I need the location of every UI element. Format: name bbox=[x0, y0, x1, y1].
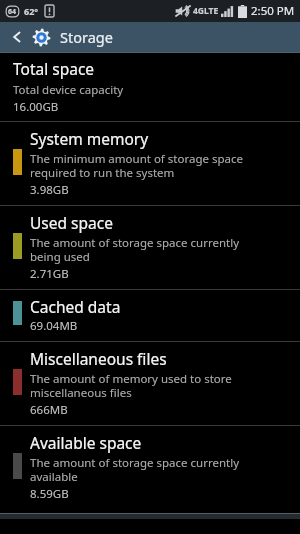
button[interactable]: Miscellaneous files bbox=[0, 342, 300, 425]
staticText: The amount of memory used to store misce… bbox=[30, 371, 232, 401]
staticText: 16.00GB bbox=[13, 99, 59, 115]
staticText: Miscellaneous files bbox=[30, 348, 167, 369]
staticText: System memory bbox=[30, 128, 149, 149]
staticText: The amount of storage space currently be… bbox=[30, 235, 240, 265]
button[interactable]: Total space bbox=[0, 53, 300, 121]
button[interactable]: Settings bbox=[30, 26, 52, 48]
staticText: 64 bbox=[8, 7, 17, 17]
staticText: Cached data bbox=[30, 296, 121, 317]
staticText: 4GLTE bbox=[193, 5, 219, 17]
staticText: 2:50 PM bbox=[251, 3, 295, 19]
staticText: 3.98GB bbox=[30, 182, 69, 198]
staticText: The minimum amount of storage space requ… bbox=[30, 151, 243, 181]
staticText: 666MB bbox=[30, 402, 68, 418]
staticText: Used space bbox=[30, 212, 113, 233]
staticText: Total space bbox=[13, 58, 95, 79]
staticText: Available space bbox=[30, 432, 142, 453]
button[interactable]: Back bbox=[7, 27, 27, 47]
button[interactable]: System memory bbox=[0, 122, 300, 205]
button[interactable]: Available space bbox=[0, 426, 300, 509]
staticText: Storage bbox=[60, 27, 113, 47]
staticText: The amount of storage space currently av… bbox=[30, 455, 240, 485]
staticText: 69.04MB bbox=[30, 318, 78, 334]
staticText: 62° bbox=[24, 5, 39, 17]
staticText: 8.59GB bbox=[30, 486, 69, 502]
staticText: 2.71GB bbox=[30, 266, 69, 282]
button[interactable]: Cached data bbox=[0, 290, 300, 341]
button[interactable]: Used space bbox=[0, 206, 300, 289]
staticText: Total device capacity bbox=[13, 82, 124, 98]
